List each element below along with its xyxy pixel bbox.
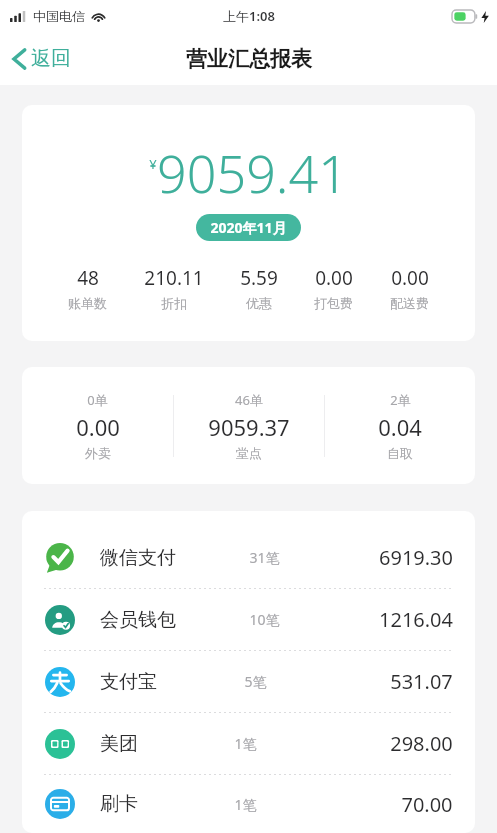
staticText: 外卖: [85, 445, 111, 461]
staticText: 1216.04: [379, 606, 453, 633]
staticText: ¥: [149, 155, 157, 173]
staticText: 9059.41: [157, 137, 348, 208]
staticText: 账单数: [68, 295, 107, 311]
staticText: 折扣: [161, 295, 187, 311]
staticText: 营业汇总报表: [186, 46, 312, 72]
staticText: 31笔: [249, 548, 280, 567]
staticText: 5.59: [240, 265, 278, 291]
staticText: 0.04: [378, 412, 422, 442]
staticText: 48: [77, 265, 99, 291]
button[interactable]: Meituan: [22, 713, 475, 774]
staticText: 配送费: [390, 295, 429, 311]
staticText: 堂点: [236, 445, 262, 461]
staticText: 210.11: [144, 265, 204, 291]
staticText: 1笔: [234, 795, 257, 814]
staticText: 0.00: [315, 265, 353, 291]
button[interactable]: Alipay: [22, 651, 475, 712]
staticText: 5笔: [244, 672, 267, 691]
button[interactable]: Back: [0, 38, 85, 79]
staticText: 0.00: [76, 412, 120, 442]
staticText: 1笔: [234, 734, 257, 753]
other: Back: [12, 47, 27, 71]
staticText: 298.00: [390, 730, 453, 757]
staticText: 中国电信: [33, 8, 85, 24]
staticText: 上午1:08: [223, 7, 275, 25]
button[interactable]: WeChat Pay: [22, 527, 475, 588]
button[interactable]: ¥: [22, 105, 475, 341]
staticText: 0单: [87, 391, 108, 409]
staticText: 10笔: [249, 610, 280, 629]
button[interactable]: Card payment: [22, 775, 475, 833]
staticText: 70.00: [401, 791, 453, 818]
staticText: 支付宝: [100, 670, 157, 694]
other: WeChat Pay: [45, 543, 75, 573]
staticText: 531.07: [390, 668, 453, 695]
button[interactable]: 2020年11月: [196, 214, 301, 241]
staticText: 6919.30: [379, 544, 453, 571]
staticText: 返回: [31, 46, 71, 71]
button[interactable]: 0单: [22, 367, 475, 484]
staticText: 会员钱包: [100, 608, 176, 632]
other: Member wallet: [45, 605, 75, 635]
staticText: 优惠: [246, 295, 272, 311]
staticText: 2020年11月: [210, 218, 287, 237]
staticText: 0.00: [391, 265, 429, 291]
staticText: 9059.37: [208, 412, 290, 442]
other: Meituan: [45, 729, 75, 759]
staticText: 打包费: [314, 295, 353, 311]
button[interactable]: Member wallet: [22, 589, 475, 650]
staticText: 自取: [387, 445, 413, 461]
staticText: 刷卡: [100, 792, 138, 816]
other: Card payment: [45, 789, 75, 819]
staticText: 微信支付: [100, 546, 176, 570]
staticText: 46单: [235, 391, 263, 409]
staticText: 2单: [390, 391, 411, 409]
staticText: 美团: [100, 732, 138, 756]
other: Alipay: [45, 667, 75, 697]
